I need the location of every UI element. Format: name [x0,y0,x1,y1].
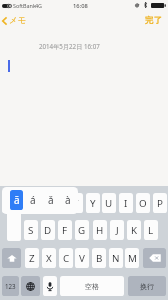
staticText: L [148,224,154,237]
staticText: 2014年5月22日 16:07 [39,42,100,50]
staticText: Z [29,252,35,265]
button[interactable]: E [35,193,49,213]
button[interactable]: U [102,193,116,213]
staticText: 换行 [140,282,154,291]
staticText: Q [5,197,13,210]
staticText: I [124,197,128,210]
staticText: D [44,224,52,237]
button[interactable]: C [59,248,73,268]
staticText: J [116,224,119,237]
button[interactable]: T [69,193,83,213]
button[interactable]: F [58,220,72,240]
button[interactable]: Shift [2,248,21,268]
button[interactable]: H [93,220,107,240]
staticText: ǎ [48,193,54,207]
staticText: C [63,252,70,265]
staticText: 123 [5,282,16,290]
staticText: T [73,197,79,210]
staticText: à [65,193,71,207]
button[interactable]: L [144,220,158,240]
staticText: F [62,224,68,237]
button[interactable]: B [92,248,106,268]
button[interactable]: W [18,193,32,213]
staticText: V [79,252,85,265]
staticText: 空格 [85,282,99,291]
button[interactable]: R [52,193,66,213]
staticText: P [157,197,163,210]
button[interactable]: D [41,220,55,240]
staticText: U [105,197,113,210]
button[interactable]: 空格 [60,276,124,296]
button[interactable]: K [127,220,141,240]
button[interactable]: Next keyboard [21,276,40,296]
button[interactable]: X [42,248,56,268]
staticText: Y [90,197,96,210]
button[interactable]: Y [86,193,100,213]
button[interactable]: Dictation [43,276,57,296]
button[interactable]: Pinyin tone choices [2,187,78,214]
button[interactable]: N [109,248,123,268]
staticText: 4G [35,2,43,9]
button[interactable]: Q [2,193,16,213]
button[interactable]: Z [25,248,39,268]
staticText: メモ [9,15,27,26]
button[interactable]: P [153,193,167,213]
staticText: B [96,252,103,265]
staticText: K [131,224,138,237]
staticText: H [96,224,104,237]
staticText: G [78,224,86,237]
button[interactable]: O [136,193,150,213]
button[interactable]: M [125,248,139,268]
staticText: SoftBank [13,2,36,9]
staticText: W [20,197,30,210]
button[interactable]: 完了 [142,12,168,29]
button[interactable]: メモ [0,12,30,29]
button[interactable]: S [24,220,38,240]
staticText: N [112,252,120,265]
button[interactable]: 123 [2,276,19,296]
button[interactable]: 换行 [128,276,166,296]
staticText: M [128,252,137,265]
staticText: á [30,193,36,207]
staticText: O [139,197,147,210]
staticText: ā [14,193,20,207]
staticText: 完了 [145,15,162,26]
button[interactable]: J [110,220,124,240]
staticText: S [28,224,34,237]
staticText: 16:08 [73,2,88,10]
staticText: X [46,252,52,265]
button[interactable]: Backspace [143,248,166,268]
button[interactable]: I [119,193,133,213]
button[interactable]: V [75,248,89,268]
button[interactable]: G [75,220,89,240]
